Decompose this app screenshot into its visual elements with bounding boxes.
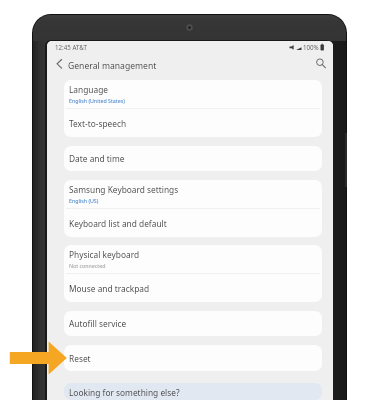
staticText: General management (68, 60, 157, 72)
button[interactable]: Physical keyboard (64, 245, 322, 273)
staticText: Date and time (69, 153, 125, 164)
staticText: 100% (303, 43, 319, 51)
staticText: English (United States) (69, 97, 125, 104)
staticText: Autofill service (69, 318, 127, 329)
staticText: 12:45 AT&T (55, 43, 87, 51)
staticText: Language (69, 84, 109, 95)
staticText: Reset (69, 353, 91, 364)
staticText: Mouse and trackpad (69, 283, 150, 294)
staticText: Looking for something else? (69, 387, 180, 398)
button[interactable]: Text-to-speech (64, 109, 322, 137)
staticText: Physical keyboard (69, 249, 140, 260)
staticText: Keyboard list and default (69, 218, 167, 229)
button[interactable]: Reset (64, 345, 322, 371)
staticText: Not connected (69, 262, 106, 269)
button[interactable]: Looking for something else? (64, 383, 322, 400)
button[interactable]: Samsung Keyboard settings (64, 180, 322, 208)
button[interactable]: Mouse and trackpad (64, 274, 322, 302)
button[interactable]: Search (311, 55, 333, 77)
button[interactable]: Autofill service (64, 311, 322, 336)
button[interactable]: Date and time (64, 146, 322, 171)
staticText: Text-to-speech (69, 118, 127, 129)
staticText: Samsung Keyboard settings (69, 184, 179, 195)
button[interactable]: Language (64, 80, 322, 108)
button[interactable]: Back (47, 55, 68, 77)
button[interactable]: Keyboard list and default (64, 209, 322, 237)
staticText: English (US) (69, 197, 99, 204)
